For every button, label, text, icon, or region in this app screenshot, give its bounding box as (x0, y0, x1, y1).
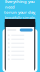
button[interactable] (8, 50, 32, 52)
button[interactable] (8, 34, 32, 36)
button[interactable] (8, 46, 32, 48)
staticText: to run your day, (4, 9, 36, 15)
button[interactable] (8, 58, 32, 60)
staticText: beautifully simple. (4, 15, 35, 20)
button[interactable] (8, 38, 32, 40)
button[interactable] (8, 54, 32, 56)
button[interactable]: Get started (20, 28, 33, 31)
staticText: Everything you need (5, 0, 35, 9)
button[interactable] (8, 42, 32, 44)
